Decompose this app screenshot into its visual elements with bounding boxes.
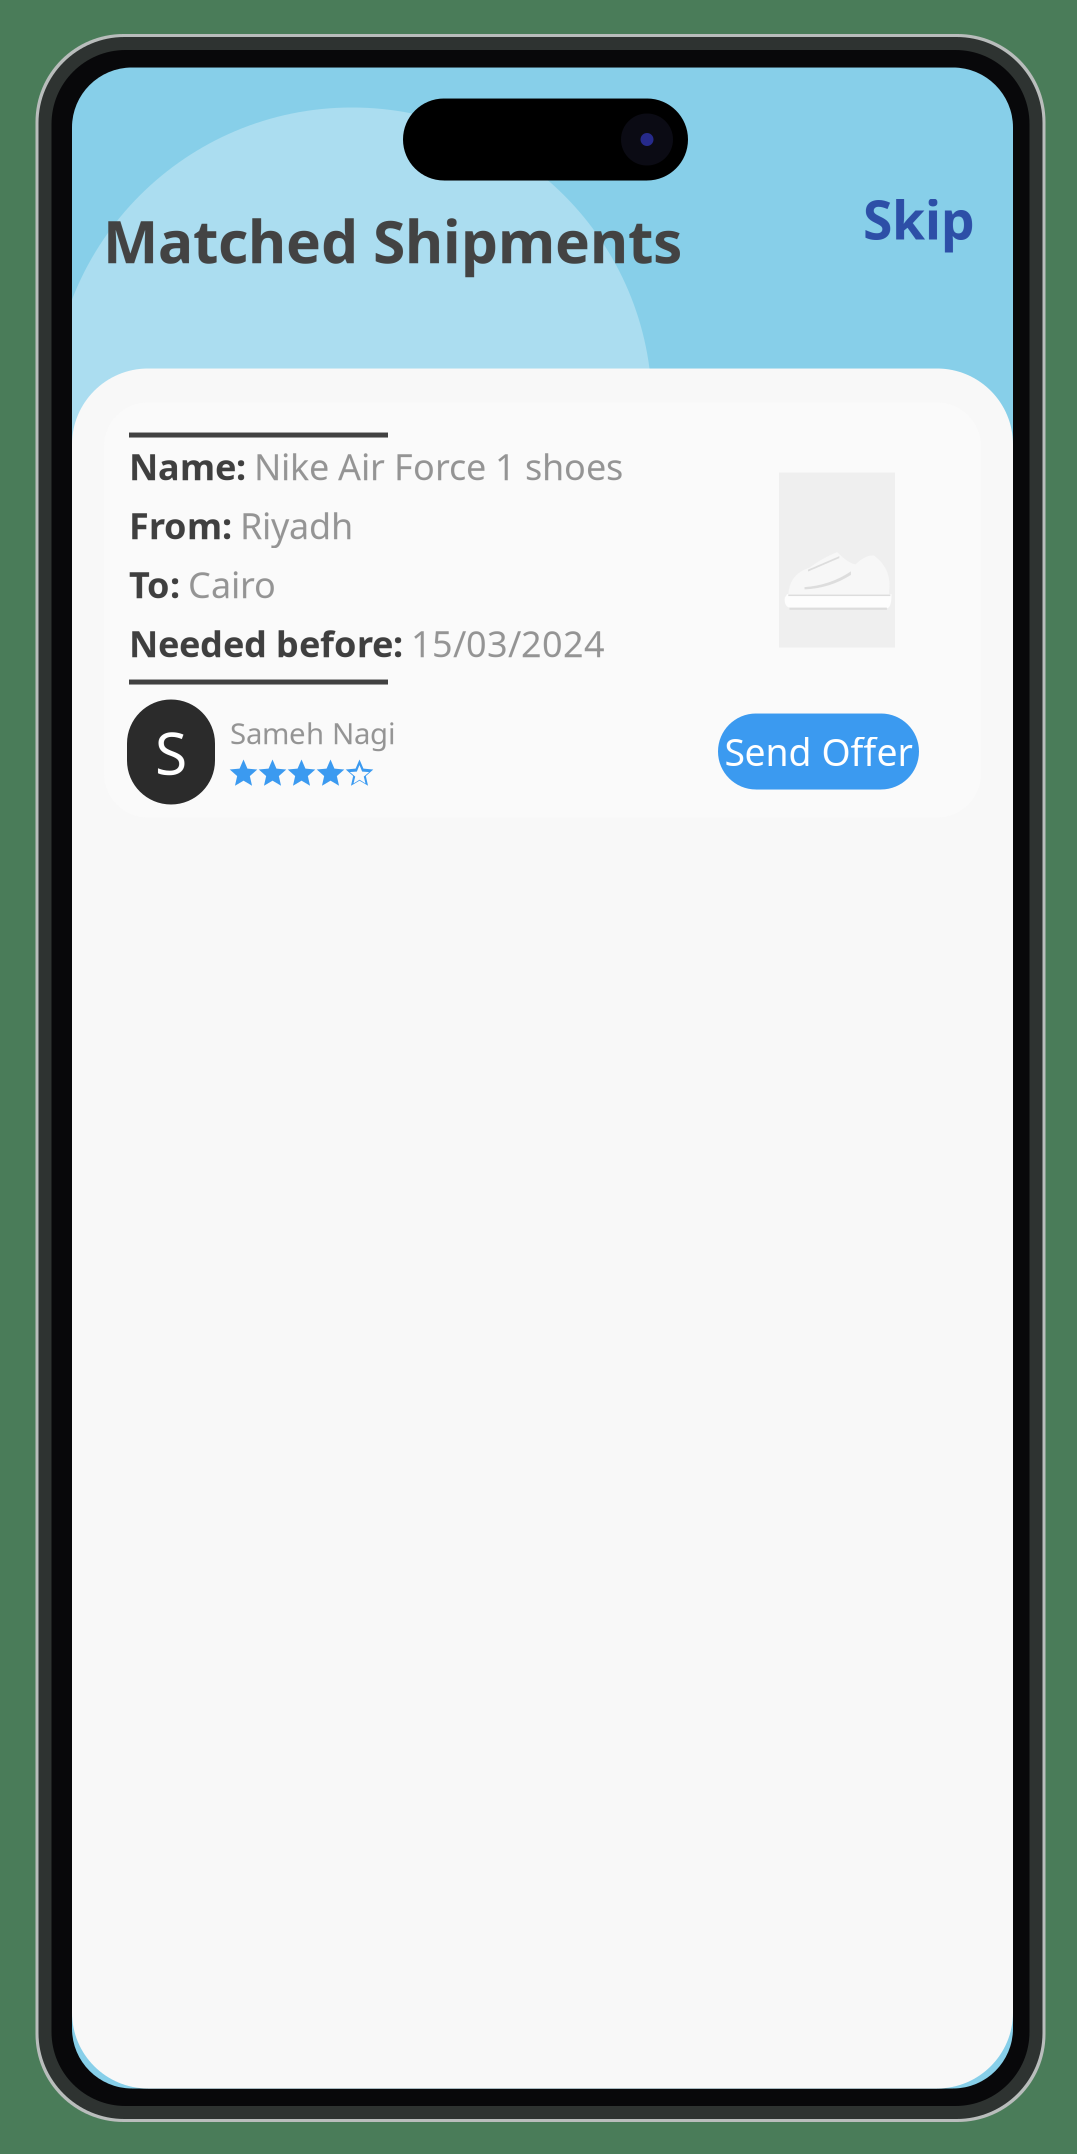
staticText: Sameh Nagi — [230, 713, 396, 752]
staticText: From: — [129, 501, 232, 549]
button[interactable]: Skip — [72, 67, 975, 254]
staticText: Matched Shipments — [103, 201, 682, 279]
staticText: Skip — [863, 183, 975, 254]
staticText: Needed before: — [129, 619, 403, 667]
staticText: Cairo — [188, 560, 276, 608]
staticText: To: — [129, 560, 180, 608]
staticText: Name: — [129, 442, 246, 490]
button[interactable]: Send Offer — [718, 713, 919, 789]
staticText: Send Offer — [724, 727, 912, 776]
staticText: S — [155, 713, 187, 791]
staticText: Riyadh — [240, 501, 353, 549]
staticText: 15/03/2024 — [411, 619, 605, 667]
staticText: Nike Air Force 1 shoes — [254, 442, 623, 490]
